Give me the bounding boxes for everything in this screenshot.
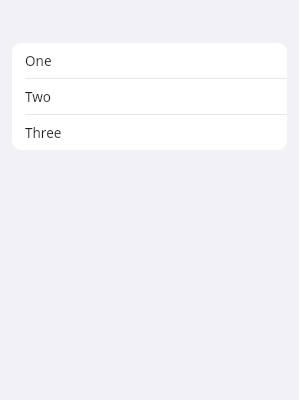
button[interactable]: Two bbox=[12, 79, 287, 114]
staticText: One bbox=[25, 52, 52, 70]
staticText: Two bbox=[25, 88, 52, 106]
staticText: Three bbox=[25, 124, 62, 142]
button[interactable]: One bbox=[12, 43, 287, 78]
button[interactable]: Three bbox=[12, 115, 287, 150]
